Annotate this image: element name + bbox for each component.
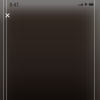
button[interactable]: Close: [2, 10, 13, 21]
staticText: 9:41: [9, 3, 18, 8]
